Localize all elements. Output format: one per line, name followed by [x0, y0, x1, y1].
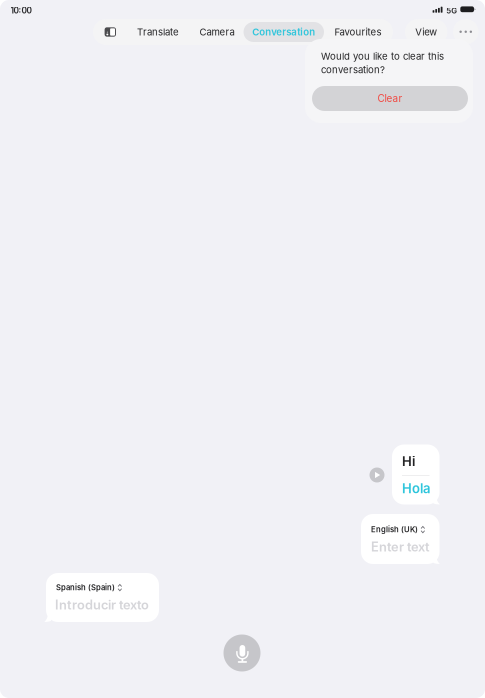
button[interactable]: More options [453, 19, 478, 44]
staticText: English (UK) [371, 525, 418, 534]
button[interactable]: Start recording [223, 634, 260, 671]
staticText: Spanish (Spain) [56, 583, 115, 592]
staticText: Would you like to clear this [321, 50, 444, 62]
staticText: conversation? [321, 64, 385, 76]
button[interactable]: Favourites [326, 19, 390, 45]
staticText: 10:00 [10, 6, 31, 16]
staticText: Hola [402, 480, 431, 496]
staticText: Hi [402, 453, 415, 469]
staticText: Conversation [252, 26, 315, 38]
staticText: View [415, 26, 437, 38]
staticText: Favourites [334, 26, 381, 38]
button[interactable]: Camera [191, 19, 243, 45]
staticText: Camera [199, 26, 234, 38]
staticText: Translate [137, 26, 179, 38]
button[interactable]: View [405, 19, 447, 45]
button[interactable]: Show sidebar [97, 19, 123, 45]
button[interactable]: Conversation [243, 22, 324, 42]
staticText: 5G [446, 6, 457, 15]
button[interactable]: Translate [129, 19, 187, 45]
staticText: Enter text [371, 539, 430, 554]
staticText: Clear [377, 92, 402, 104]
staticText: Introducir texto [55, 597, 149, 612]
button[interactable]: Play translation [369, 467, 384, 482]
button[interactable]: Clear [312, 86, 468, 111]
